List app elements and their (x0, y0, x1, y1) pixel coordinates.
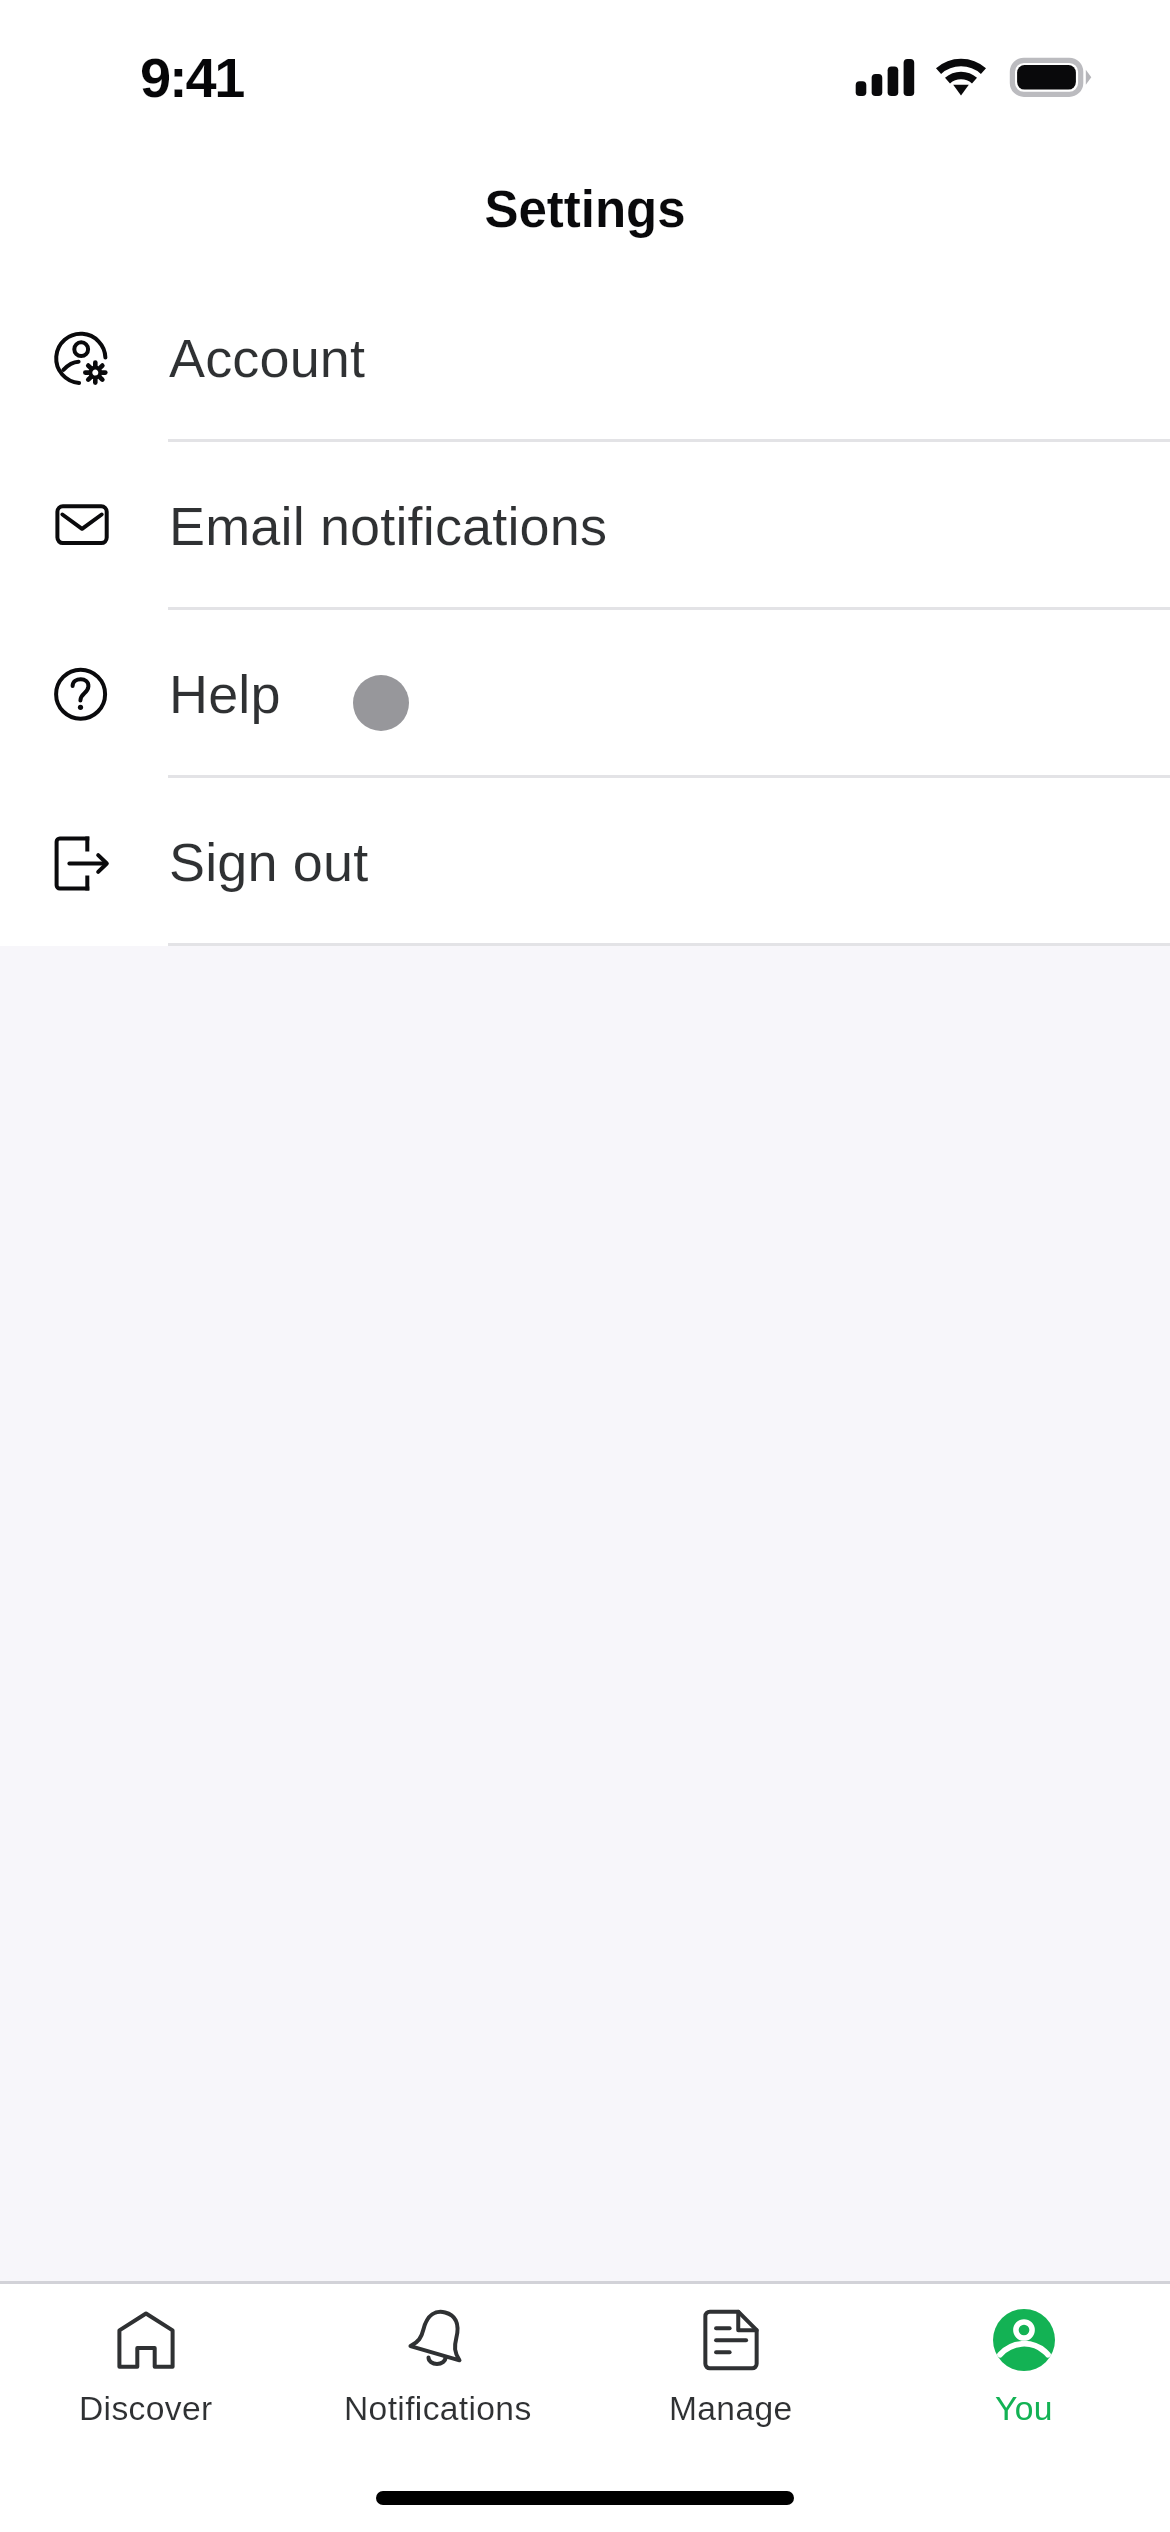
button[interactable]: Notifications (292, 2284, 584, 2449)
button[interactable]: Help (0, 610, 1170, 778)
staticText: Notifications (344, 2390, 532, 2428)
button[interactable]: Account (0, 274, 1170, 442)
staticText: Email notifications (169, 496, 608, 556)
button[interactable]: Discover (0, 2284, 292, 2449)
button[interactable]: Manage (584, 2284, 877, 2449)
button[interactable]: You (877, 2284, 1170, 2449)
staticText: Discover (79, 2390, 213, 2428)
staticText: Help (169, 664, 281, 724)
staticText: Manage (669, 2390, 793, 2428)
staticText: 9:41 (140, 46, 244, 109)
staticText: Settings (484, 181, 686, 238)
button[interactable]: Sign out (0, 778, 1170, 946)
button[interactable]: Email notifications (0, 442, 1170, 610)
staticText: Account (169, 328, 366, 388)
staticText: Sign out (169, 832, 369, 892)
staticText: You (995, 2390, 1053, 2428)
